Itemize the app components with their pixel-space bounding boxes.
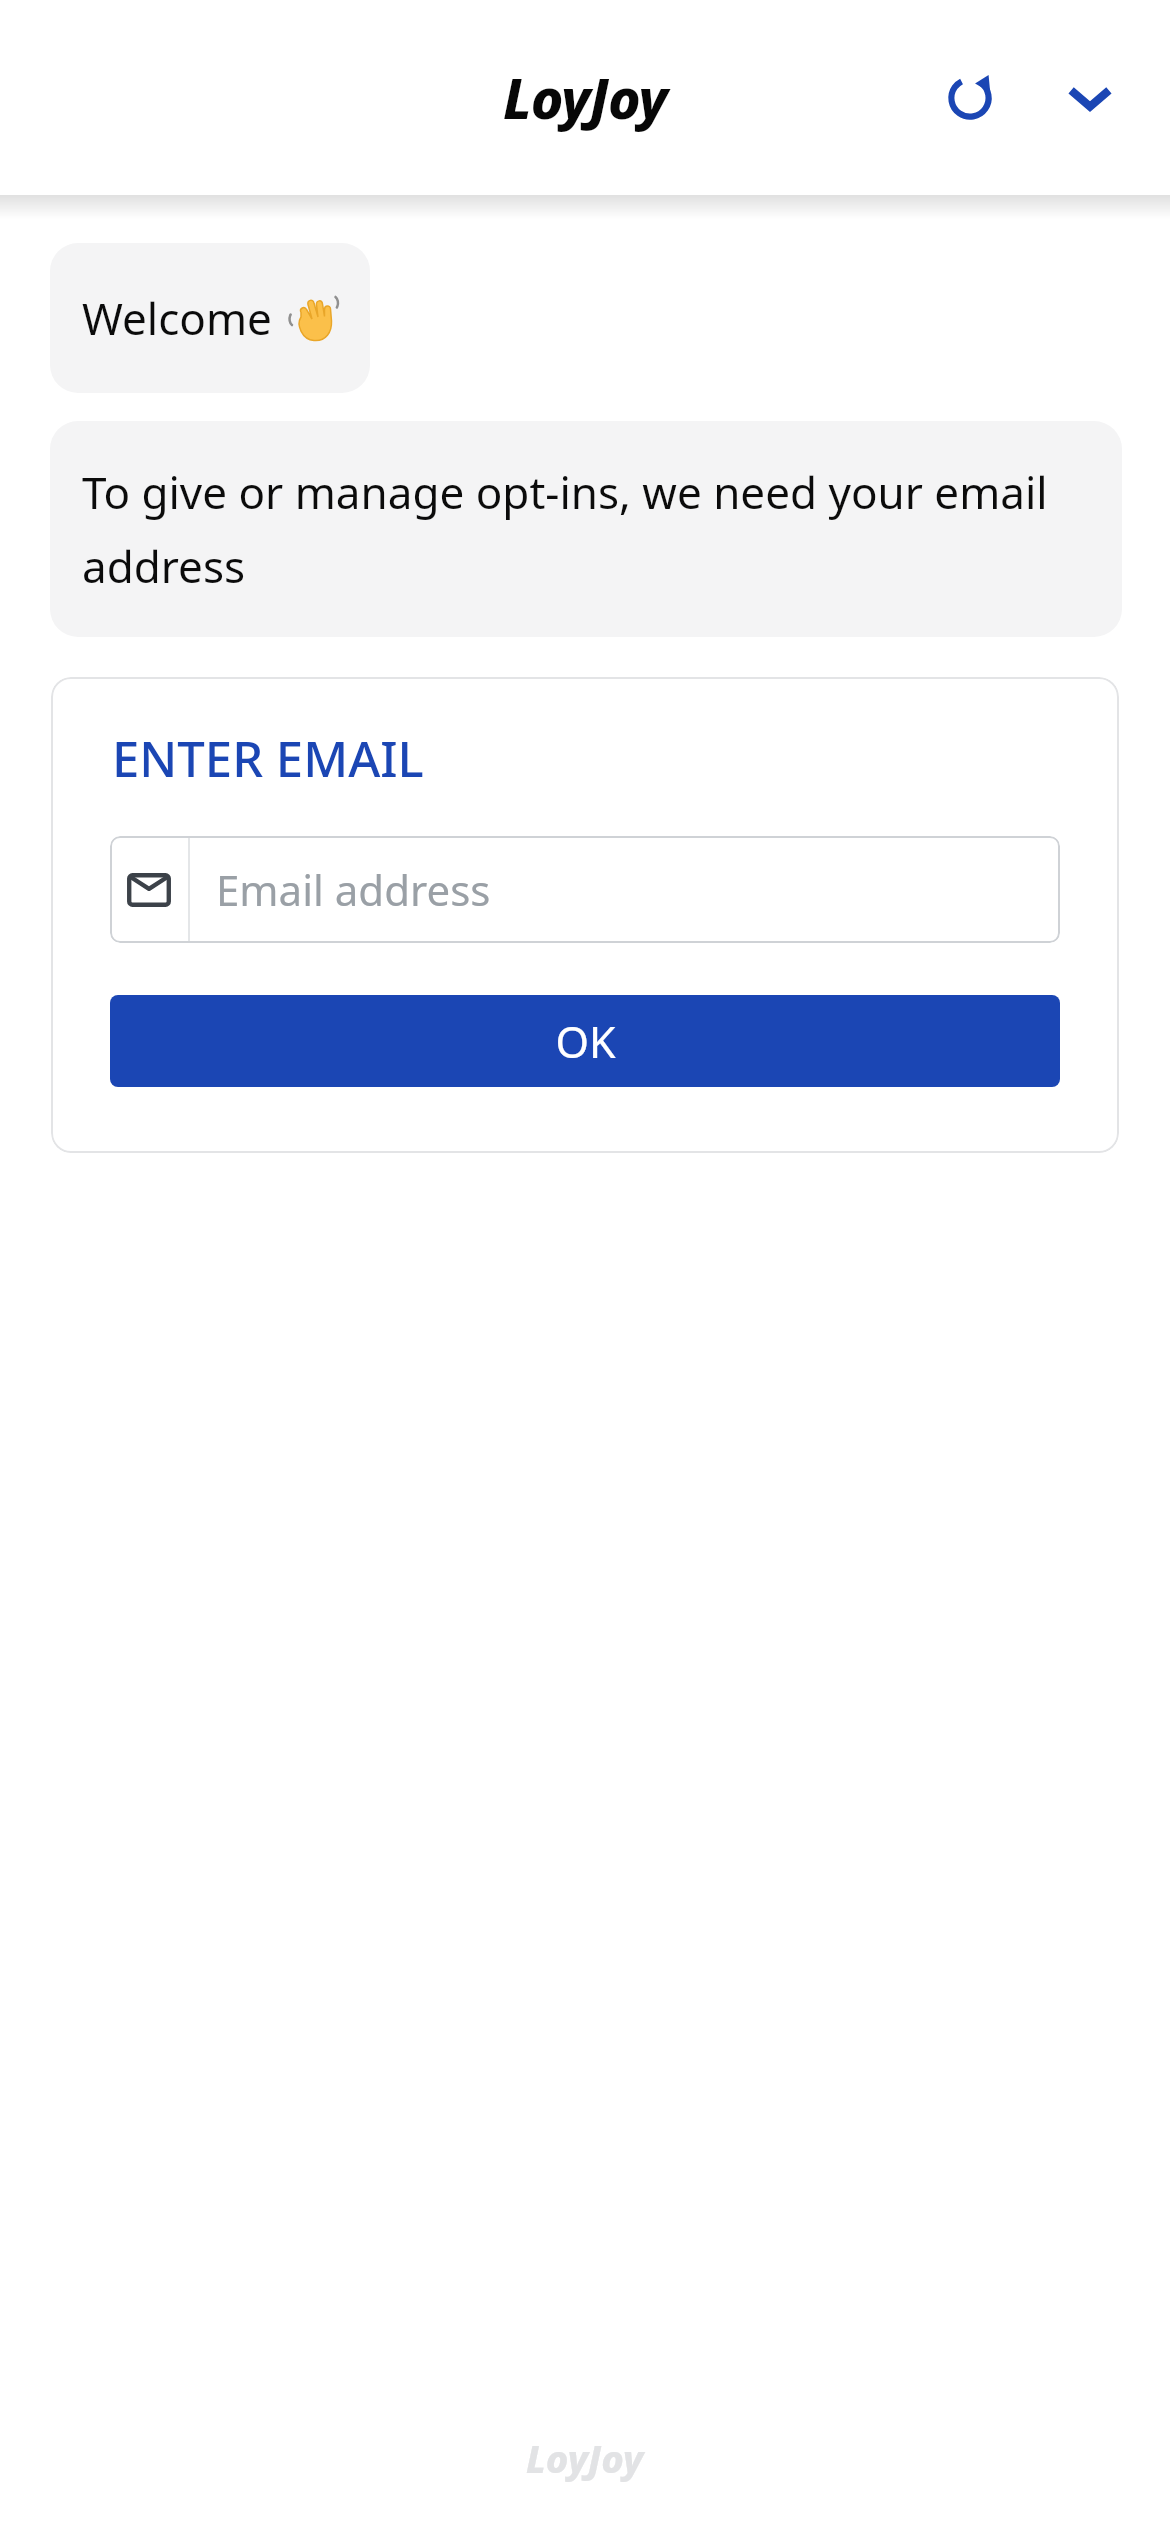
button[interactable]: Expand menu (1042, 50, 1138, 146)
staticText: OK (555, 1012, 616, 1071)
button[interactable]: Welcome (50, 243, 370, 393)
button[interactable]: Refresh (922, 50, 1018, 146)
button[interactable]: To give or manage opt-ins, we need your … (50, 421, 1122, 637)
staticText: Welcome (82, 288, 272, 348)
staticText: To give or manage opt-ins, we need your … (82, 462, 1090, 596)
staticText: LoyJoy (526, 2432, 644, 2484)
button[interactable]: OK (110, 995, 1060, 1087)
staticText: ENTER EMAIL (112, 725, 424, 792)
staticText: Email address (216, 861, 491, 918)
staticText: LoyJoy (503, 60, 667, 135)
button[interactable]: Email address (110, 836, 1060, 943)
